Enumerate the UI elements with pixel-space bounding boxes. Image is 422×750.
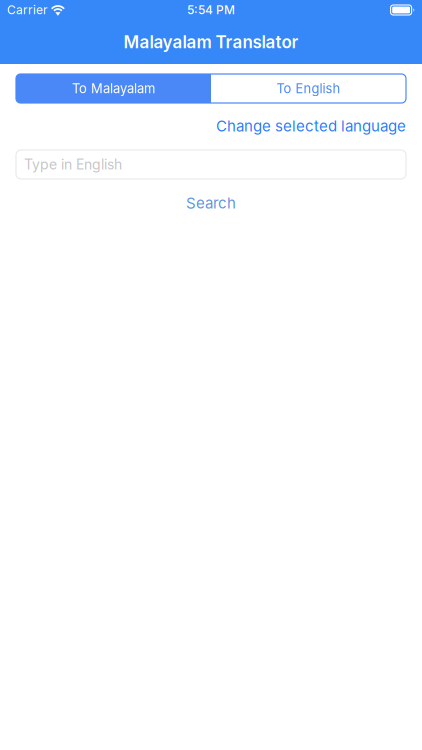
staticText: Type in English — [24, 156, 122, 173]
button[interactable]: To English — [211, 74, 406, 103]
button[interactable]: Search — [16, 192, 406, 214]
staticText: To Malayalam — [72, 81, 155, 96]
staticText: Search — [186, 194, 236, 212]
staticText: Change selected language — [216, 117, 406, 135]
staticText: 5:54 PM — [187, 3, 235, 17]
staticText: Malayalam Translator — [123, 32, 298, 52]
button[interactable]: Change selected language — [216, 115, 406, 137]
button[interactable]: Type in English — [16, 150, 406, 179]
staticText: To English — [276, 81, 340, 96]
staticText: Carrier — [7, 3, 48, 17]
button[interactable]: To Malayalam — [16, 74, 211, 103]
